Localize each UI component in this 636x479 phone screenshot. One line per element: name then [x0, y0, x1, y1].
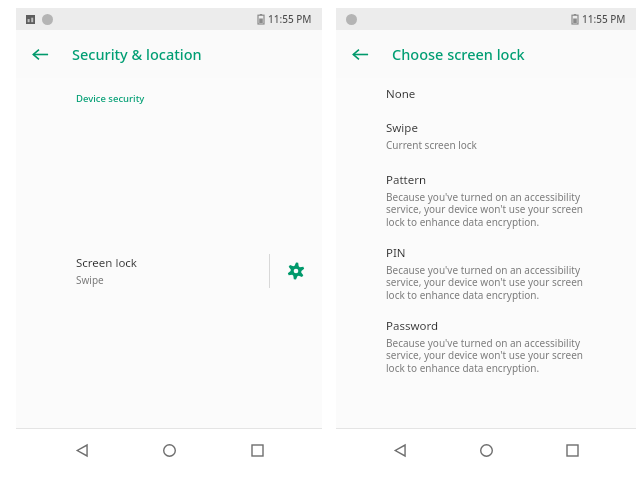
- button[interactable]: Back: [60, 429, 104, 471]
- button[interactable]: Screen lock settings: [270, 113, 322, 428]
- staticText: Security & location: [72, 44, 202, 64]
- staticText: Pattern: [386, 172, 427, 188]
- staticText: Password: [386, 318, 439, 334]
- staticText: PIN: [386, 245, 406, 261]
- button[interactable]: Recent apps: [235, 429, 279, 471]
- button[interactable]: Swipe: [336, 120, 636, 152]
- staticText: Swipe: [76, 273, 104, 287]
- staticText: 11:55 PM: [582, 12, 626, 26]
- button[interactable]: Back: [336, 30, 384, 78]
- staticText: Choose screen lock: [392, 44, 525, 64]
- staticText: Because you've turned on an accessibilit…: [386, 336, 583, 375]
- button[interactable]: None: [336, 86, 636, 102]
- staticText: Because you've turned on an accessibilit…: [386, 263, 583, 302]
- button[interactable]: Screen lock: [16, 253, 269, 289]
- staticText: Device security: [76, 92, 145, 105]
- button[interactable]: PIN: [336, 245, 636, 302]
- button[interactable]: Password: [336, 318, 636, 375]
- staticText: Swipe: [386, 120, 418, 136]
- button[interactable]: Pattern: [336, 172, 636, 229]
- staticText: Current screen lock: [386, 138, 477, 152]
- staticText: Screen lock: [76, 255, 138, 271]
- staticText: None: [386, 86, 416, 102]
- button[interactable]: Back: [16, 30, 64, 78]
- button[interactable]: Home: [464, 429, 508, 471]
- staticText: 11:55 PM: [268, 12, 312, 26]
- staticText: Because you've turned on an accessibilit…: [386, 190, 583, 229]
- button[interactable]: Home: [147, 429, 191, 471]
- button[interactable]: Recent apps: [550, 429, 594, 471]
- button[interactable]: Back: [378, 429, 422, 471]
